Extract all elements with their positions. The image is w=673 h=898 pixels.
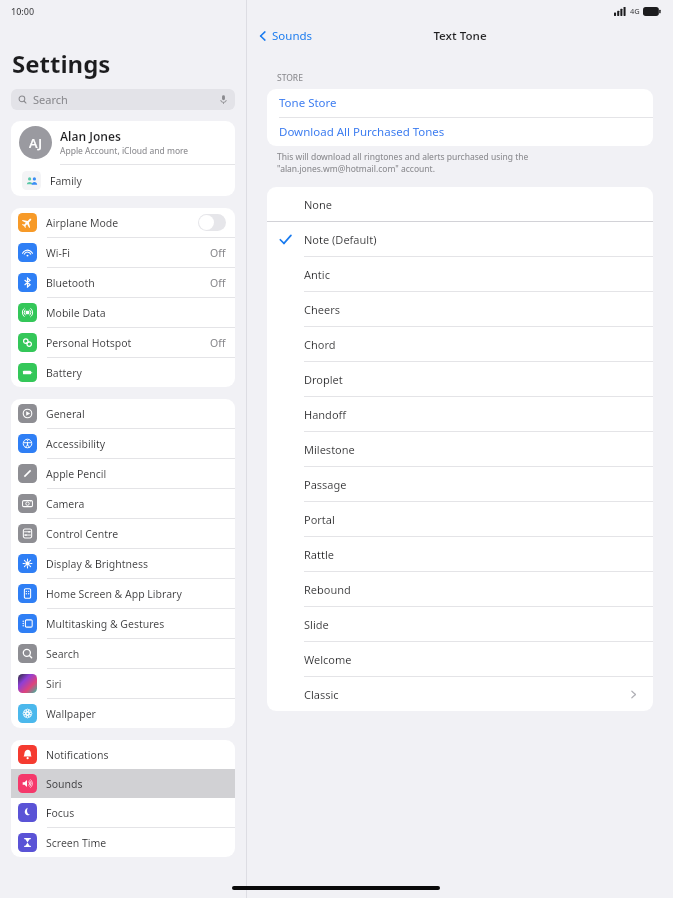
staticText: Multitasking & Gestures	[46, 617, 165, 631]
staticText: Control Centre	[46, 527, 119, 541]
staticText: Antic	[304, 267, 653, 282]
staticText: Portal	[304, 512, 653, 527]
staticText: "alan.jones.wm@hotmail.com" account.	[277, 163, 435, 175]
staticText: Off	[210, 246, 226, 260]
staticText: Battery	[46, 366, 82, 380]
staticText: Cheers	[304, 302, 653, 317]
button[interactable]: Mobile Data	[11, 298, 235, 328]
staticText: Mobile Data	[46, 306, 106, 320]
staticText: Focus	[46, 806, 75, 820]
staticText: Settings	[12, 47, 111, 80]
button[interactable]: Notifications	[11, 740, 235, 769]
staticText: Rattle	[304, 547, 653, 562]
staticText: 4G	[630, 6, 640, 16]
staticText: Alan Jones	[60, 128, 121, 144]
staticText: Screen Time	[46, 836, 107, 850]
button[interactable]: Control Centre	[11, 519, 235, 549]
button[interactable]: Search	[11, 639, 235, 669]
button[interactable]: Home Screen & App Library	[11, 579, 235, 609]
staticText: Sounds	[46, 777, 83, 791]
staticText: Siri	[46, 677, 62, 691]
button[interactable]: Download All Purchased Tones	[267, 118, 653, 146]
staticText: Search	[46, 647, 80, 661]
staticText: Accessibility	[46, 437, 106, 451]
button[interactable]: Welcome	[267, 642, 653, 677]
button[interactable]: Passage	[267, 467, 653, 502]
button[interactable]: AJ	[19, 121, 235, 164]
staticText: Sounds	[272, 28, 313, 44]
button[interactable]: Focus	[11, 798, 235, 828]
button[interactable]: Siri	[11, 669, 235, 699]
staticText: Off	[210, 276, 226, 290]
button[interactable]: Note (Default)	[267, 222, 653, 257]
staticText: Passage	[304, 477, 653, 492]
staticText: Airplane Mode	[46, 216, 119, 230]
staticText: Family	[50, 174, 82, 188]
staticText: Camera	[46, 497, 85, 511]
button[interactable]: Bluetooth	[11, 268, 235, 298]
staticText: Apple Account, iCloud and more	[60, 145, 189, 157]
staticText: Chord	[304, 337, 653, 352]
staticText: Welcome	[304, 652, 653, 667]
button[interactable]: Wi-Fi	[11, 238, 235, 268]
button[interactable]: General	[11, 399, 235, 429]
button[interactable]: Droplet	[267, 362, 653, 397]
button[interactable]: Sounds	[11, 769, 235, 798]
staticText: Display & Brightness	[46, 557, 149, 571]
staticText: Wi-Fi	[46, 246, 71, 260]
staticText: Note (Default)	[304, 232, 653, 247]
staticText: General	[46, 407, 85, 421]
button[interactable]: Chord	[267, 327, 653, 362]
button[interactable]: Sounds	[255, 25, 315, 47]
button[interactable]: Airplane Mode	[11, 208, 235, 238]
staticText: Search	[33, 92, 218, 107]
staticText: Notifications	[46, 748, 109, 762]
button[interactable]: Classic	[267, 677, 653, 711]
button[interactable]: Battery	[11, 358, 235, 387]
staticText: Wallpaper	[46, 707, 96, 721]
staticText: Download All Purchased Tones	[279, 124, 445, 140]
staticText: 10:00	[11, 5, 35, 17]
button[interactable]: Accessibility	[11, 429, 235, 459]
button[interactable]: Wallpaper	[11, 699, 235, 728]
button[interactable]: Portal	[267, 502, 653, 537]
button[interactable]: Personal Hotspot	[11, 328, 235, 358]
staticText: Text Tone	[433, 28, 487, 44]
button[interactable]: Cheers	[267, 292, 653, 327]
button[interactable]: Slide	[267, 607, 653, 642]
button[interactable]: Search	[11, 89, 235, 110]
staticText: This will download all ringtones and ale…	[277, 151, 529, 163]
button[interactable]: Rattle	[267, 537, 653, 572]
button[interactable]: None	[267, 187, 653, 222]
staticText: AJ	[29, 134, 42, 152]
staticText: Droplet	[304, 372, 653, 387]
button[interactable]: Handoff	[267, 397, 653, 432]
staticText: Slide	[304, 617, 653, 632]
staticText: STORE	[277, 72, 303, 84]
staticText: Off	[210, 336, 226, 350]
button[interactable]: Antic	[267, 257, 653, 292]
staticText: Home Screen & App Library	[46, 587, 182, 601]
other: Voice search	[218, 94, 229, 105]
staticText: Personal Hotspot	[46, 336, 132, 350]
button[interactable]: Multitasking & Gestures	[11, 609, 235, 639]
staticText: Milestone	[304, 442, 653, 457]
button[interactable]: Screen Time	[11, 828, 235, 857]
staticText: Tone Store	[279, 95, 337, 111]
button[interactable]: Tone Store	[267, 89, 653, 117]
button[interactable]: Family	[22, 165, 235, 196]
button[interactable]: Milestone	[267, 432, 653, 467]
staticText: Handoff	[304, 407, 653, 422]
staticText: None	[304, 197, 653, 212]
button[interactable]: Camera	[11, 489, 235, 519]
staticText: Classic	[304, 687, 628, 702]
button[interactable]: Display & Brightness	[11, 549, 235, 579]
button[interactable]: Apple Pencil	[11, 459, 235, 489]
button[interactable]: Airplane Mode toggle	[198, 214, 226, 231]
staticText: Bluetooth	[46, 276, 95, 290]
button[interactable]: Rebound	[267, 572, 653, 607]
staticText: Apple Pencil	[46, 467, 107, 481]
staticText: Rebound	[304, 582, 653, 597]
